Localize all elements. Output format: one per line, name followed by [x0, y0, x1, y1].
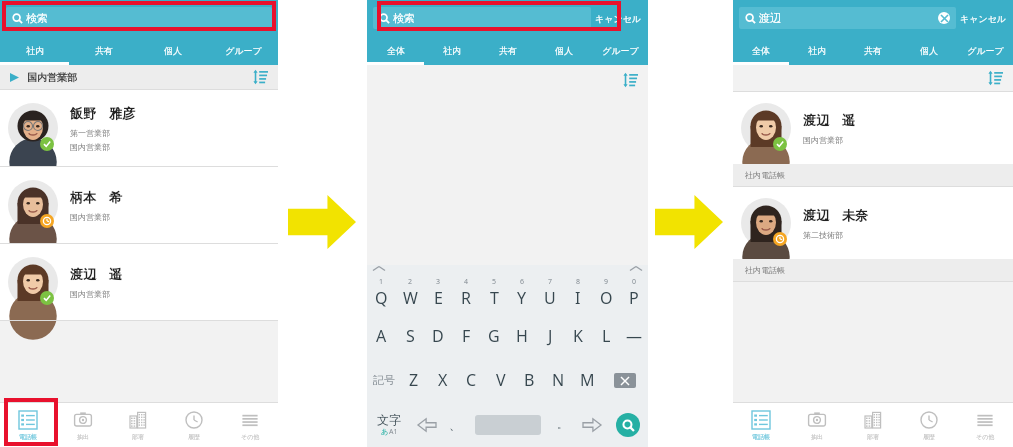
- staticText: 渡辺 遥: [70, 265, 122, 283]
- button[interactable]: Backspace: [602, 358, 648, 402]
- button[interactable]: Right: [576, 402, 607, 447]
- staticText: H: [516, 325, 528, 347]
- staticText: 社内電話帳: [745, 170, 785, 180]
- button[interactable]: 共有: [480, 38, 536, 62]
- button[interactable]: 記号: [367, 358, 400, 402]
- button[interactable]: 全体: [733, 38, 789, 62]
- button[interactable]: Sort: [252, 69, 268, 85]
- button[interactable]: 全体: [367, 38, 424, 62]
- button[interactable]: 8: [564, 272, 592, 314]
- button[interactable]: 。: [548, 402, 576, 447]
- button[interactable]: F: [452, 314, 480, 358]
- button[interactable]: 電話帳: [733, 403, 789, 447]
- button[interactable]: 渡辺 遥: [0, 244, 278, 320]
- button[interactable]: グループ: [957, 38, 1013, 62]
- staticText: A1: [389, 427, 398, 437]
- button[interactable]: 柄本 希: [0, 167, 278, 243]
- button[interactable]: 共有: [69, 38, 138, 62]
- button[interactable]: その他: [957, 403, 1013, 447]
- button[interactable]: 個人: [536, 38, 592, 62]
- button[interactable]: Sort: [987, 70, 1003, 86]
- button[interactable]: 社内: [0, 38, 69, 62]
- button[interactable]: 国内営業部: [0, 65, 278, 89]
- button[interactable]: M: [573, 358, 602, 402]
- button[interactable]: 5: [480, 272, 508, 314]
- button[interactable]: 抽出: [55, 403, 110, 447]
- button[interactable]: 9: [592, 272, 620, 314]
- button[interactable]: 6: [508, 272, 536, 314]
- button[interactable]: N: [544, 358, 573, 402]
- button[interactable]: 電話帳: [0, 403, 55, 447]
- staticText: Y: [517, 287, 527, 309]
- button[interactable]: S: [396, 314, 424, 358]
- staticText: 共有: [95, 45, 113, 56]
- staticText: 履歴: [923, 433, 935, 441]
- button[interactable]: K: [564, 314, 592, 358]
- staticText: 柄本 希: [70, 188, 122, 206]
- button[interactable]: 文字: [367, 402, 411, 447]
- button[interactable]: 2: [396, 272, 424, 314]
- button[interactable]: グループ: [208, 38, 278, 62]
- button[interactable]: 3: [424, 272, 452, 314]
- button[interactable]: 個人: [138, 38, 208, 62]
- staticText: 抽出: [77, 433, 89, 441]
- button[interactable]: 0: [620, 272, 648, 314]
- button[interactable]: グループ: [592, 38, 648, 62]
- button[interactable]: 部署: [845, 403, 901, 447]
- button[interactable]: H: [508, 314, 536, 358]
- button[interactable]: G: [480, 314, 508, 358]
- staticText: C: [466, 369, 477, 391]
- button[interactable]: 個人: [901, 38, 957, 62]
- button[interactable]: Z: [400, 358, 428, 402]
- button[interactable]: B: [515, 358, 544, 402]
- button[interactable]: A: [367, 314, 396, 358]
- staticText: O: [600, 287, 613, 309]
- staticText: 国内営業部: [27, 71, 77, 84]
- button[interactable]: 渡辺: [739, 7, 956, 29]
- button[interactable]: 渡辺 遥: [733, 92, 1013, 164]
- button[interactable]: 、: [442, 402, 467, 447]
- staticText: 9: [604, 277, 609, 287]
- button[interactable]: 社内: [424, 38, 480, 62]
- staticText: 個人: [920, 45, 938, 56]
- button[interactable]: 共有: [845, 38, 901, 62]
- button[interactable]: 渡辺 未奈: [733, 187, 1013, 259]
- button[interactable]: キャンセル: [595, 13, 642, 24]
- button[interactable]: Sort: [622, 72, 638, 88]
- button[interactable]: キャンセル: [960, 13, 1007, 24]
- button[interactable]: D: [424, 314, 452, 358]
- button[interactable]: C: [457, 358, 486, 402]
- button[interactable]: 7: [536, 272, 564, 314]
- button[interactable]: J: [536, 314, 564, 358]
- button[interactable]: Left: [411, 402, 442, 447]
- button[interactable]: V: [486, 358, 515, 402]
- button[interactable]: [467, 402, 548, 447]
- staticText: グループ: [602, 45, 639, 56]
- staticText: T: [490, 287, 499, 309]
- button[interactable]: Search: [607, 402, 648, 447]
- staticText: 社内電話帳: [745, 265, 785, 275]
- staticText: 。: [557, 418, 567, 431]
- button[interactable]: 社内: [789, 38, 845, 62]
- button[interactable]: X: [428, 358, 457, 402]
- button[interactable]: —: [620, 314, 648, 358]
- button[interactable]: 履歴: [901, 403, 957, 447]
- button[interactable]: 部署: [110, 403, 166, 447]
- button[interactable]: 4: [452, 272, 480, 314]
- staticText: 社内: [443, 45, 461, 56]
- staticText: グループ: [225, 45, 262, 56]
- staticText: 共有: [864, 45, 882, 56]
- button[interactable]: L: [592, 314, 620, 358]
- staticText: V: [496, 369, 506, 391]
- staticText: 社内: [26, 45, 44, 56]
- button[interactable]: Clear: [938, 12, 950, 24]
- staticText: 飯野 雅彦: [70, 104, 135, 122]
- button[interactable]: 検索: [6, 7, 272, 29]
- button[interactable]: その他: [222, 403, 278, 447]
- button[interactable]: 飯野 雅彦: [0, 90, 278, 166]
- button[interactable]: 抽出: [789, 403, 845, 447]
- button[interactable]: 検索: [373, 7, 591, 29]
- staticText: W: [403, 287, 418, 309]
- button[interactable]: 履歴: [166, 403, 222, 447]
- button[interactable]: 1: [367, 272, 396, 314]
